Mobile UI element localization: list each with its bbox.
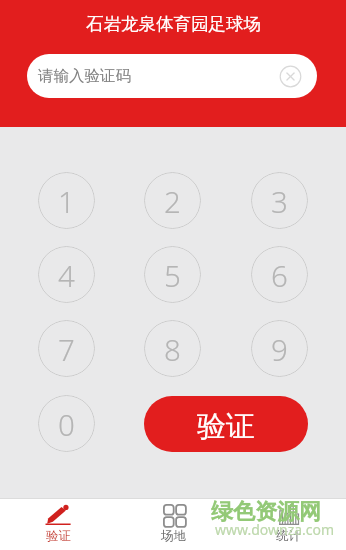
staticText: 0 [58,404,75,444]
staticText: 石岩龙泉体育园足球场 [86,13,261,35]
staticText: 验证 [197,408,255,445]
staticText: 4 [58,255,75,295]
button[interactable]: 请输入验证码 [27,54,317,98]
button[interactable]: 6 [251,246,308,303]
button[interactable]: 统计 [231,498,346,550]
staticText: 6 [271,255,288,295]
button[interactable]: 4 [38,246,95,303]
button[interactable]: 9 [251,320,308,377]
button[interactable]: 8 [144,320,201,377]
staticText: 7 [58,329,75,369]
button[interactable]: 0 [38,395,95,452]
button[interactable]: 1 [38,172,95,229]
button[interactable]: 5 [144,246,201,303]
button[interactable]: 7 [38,320,95,377]
staticText: 绿色资源网 [211,498,321,526]
button[interactable]: 3 [251,172,308,229]
staticText: 统计 [276,528,301,544]
button[interactable]: 2 [144,172,201,229]
staticText: 1 [58,181,75,221]
staticText: 9 [271,329,288,369]
staticText: 2 [164,181,181,221]
button[interactable]: 场地 [116,498,231,550]
staticText: 场地 [161,528,186,544]
staticText: 5 [164,255,181,295]
button[interactable]: 验证 [0,498,116,550]
staticText: 3 [271,181,288,221]
button[interactable]: 验证 [144,396,308,452]
staticText: www.downza.com [215,520,335,539]
button[interactable]: Clear input [278,64,302,88]
staticText: 验证 [46,528,71,544]
staticText: 请输入验证码 [38,66,131,86]
staticText: 8 [164,329,181,369]
